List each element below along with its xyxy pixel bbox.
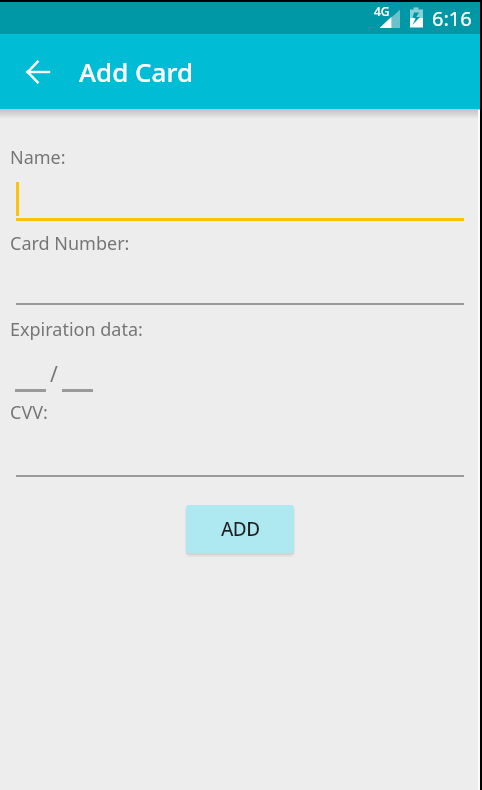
button[interactable]: Back bbox=[14, 48, 62, 96]
staticText: Expiration data: bbox=[10, 317, 143, 342]
staticText: 6:16 bbox=[432, 5, 472, 32]
staticText: 4G bbox=[374, 3, 390, 19]
button[interactable] bbox=[16, 182, 464, 221]
staticText: ADD bbox=[221, 516, 260, 542]
button[interactable]: / bbox=[15, 360, 95, 394]
button[interactable]: ADD bbox=[186, 505, 294, 553]
staticText: Name: bbox=[10, 145, 66, 170]
staticText: / bbox=[50, 360, 58, 389]
staticText: Card Number: bbox=[10, 231, 130, 256]
staticText: CVV: bbox=[10, 400, 48, 425]
staticText: Add Card bbox=[79, 54, 194, 89]
